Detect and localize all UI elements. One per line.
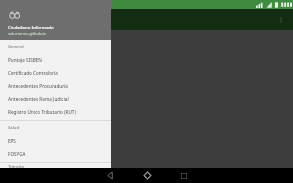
button[interactable]: EPS [0,134,111,147]
button[interactable]: Puntaje SISBEN [0,53,111,66]
button[interactable]: Recent apps [172,168,196,183]
button[interactable]: Antecedentes Rama Judicial [0,92,111,105]
staticText: Certificado Contraloría [8,70,58,76]
staticText: Tránsito [8,164,25,168]
button[interactable]: Ciudadano Informado [0,0,111,40]
staticText: Puntaje SISBEN [8,57,42,63]
staticText: Revise el menu ☰ para ver la lista de se… [37,70,94,91]
staticText: Introduzca la información que el servici… [37,108,105,129]
button[interactable]: Antecedentes Procuraduría [0,79,111,92]
staticText: Antecedentes Rama Judicial [8,96,69,102]
staticText: Salud [8,125,20,131]
staticText: Elija un servicio de la lista [37,96,101,103]
button[interactable]: Home [135,168,159,183]
staticText: Ciudadano Informado [8,25,54,31]
button[interactable]: Back [98,168,122,183]
staticText: FOSYGA [8,151,26,157]
button[interactable]: More options [273,12,289,28]
button[interactable]: FOSYGA [0,147,111,160]
button[interactable]: Certificado Contraloría [0,66,111,79]
staticText: Guía Rápida [37,56,76,65]
staticText: Registro Único Tributario (RUT) [8,109,76,115]
staticText: soluciones-github.io [8,31,47,36]
button[interactable]: Registro Único Tributario (RUT) [0,105,111,118]
staticText: EPS [8,138,16,144]
staticText: Antecedentes Procuraduría [8,83,68,89]
staticText: General [8,44,24,50]
